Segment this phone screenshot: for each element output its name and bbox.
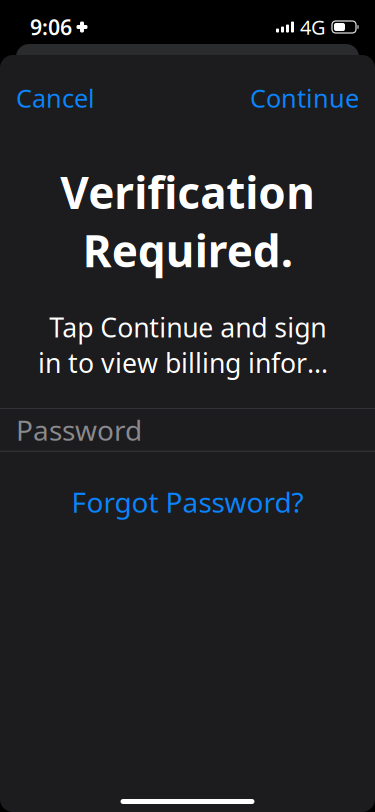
staticText: 9:06: [30, 13, 72, 41]
staticText: Continue: [250, 81, 359, 115]
staticText: Password: [16, 411, 142, 448]
button[interactable]: Password: [0, 409, 375, 451]
staticText: Tap Continue and sign in to view billing…: [38, 309, 337, 380]
button[interactable]: Forgot Password?: [51, 473, 323, 530]
button[interactable]: Cancel: [0, 71, 111, 125]
button[interactable]: Continue: [234, 71, 375, 125]
staticText: Cancel: [16, 81, 95, 115]
staticText: Forgot Password?: [71, 483, 303, 520]
staticText: 4G: [300, 14, 326, 40]
staticText: Verification Required.: [60, 163, 315, 279]
